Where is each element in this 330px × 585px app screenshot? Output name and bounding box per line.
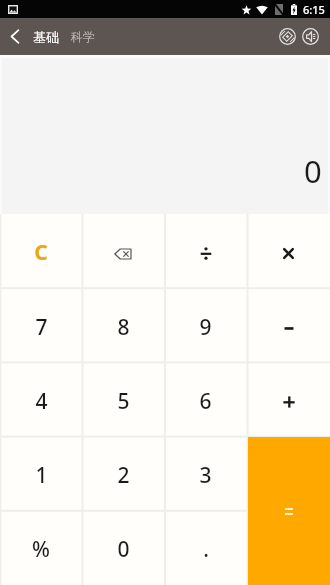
button[interactable]: % bbox=[0, 511, 82, 585]
staticText: 9 bbox=[199, 313, 212, 342]
button[interactable]: Back bbox=[0, 18, 30, 55]
staticText: 0 bbox=[304, 150, 322, 192]
staticText: 1 bbox=[35, 461, 48, 490]
staticText: 基础 bbox=[33, 29, 59, 45]
button[interactable]: Equals bbox=[248, 437, 330, 585]
button[interactable]: Plus bbox=[247, 363, 330, 437]
button[interactable]: Multiply bbox=[247, 214, 330, 289]
button[interactable]: C bbox=[0, 214, 82, 289]
staticText: 0 bbox=[117, 535, 130, 564]
staticText: % bbox=[32, 535, 50, 564]
staticText: 科学 bbox=[71, 29, 95, 44]
button[interactable]: 基础 bbox=[31, 18, 61, 55]
button[interactable]: Theme bbox=[276, 18, 299, 55]
button[interactable]: 8 bbox=[82, 289, 164, 363]
staticText: 2 bbox=[117, 461, 130, 490]
staticText: . bbox=[203, 535, 209, 564]
button[interactable]: . bbox=[164, 511, 247, 585]
staticText: 6:15 bbox=[303, 2, 325, 17]
button[interactable]: Minus bbox=[247, 289, 330, 363]
button[interactable]: Backspace bbox=[82, 214, 164, 289]
staticText: 5 bbox=[117, 387, 130, 416]
staticText: 3 bbox=[199, 461, 212, 490]
staticText: 8 bbox=[117, 313, 130, 342]
button[interactable]: 9 bbox=[164, 289, 247, 363]
button[interactable]: 3 bbox=[164, 437, 247, 511]
staticText: C bbox=[34, 238, 48, 267]
button[interactable]: 0 bbox=[82, 511, 164, 585]
button[interactable]: 2 bbox=[82, 437, 164, 511]
button[interactable]: 5 bbox=[82, 363, 164, 437]
button[interactable]: Divide bbox=[164, 214, 247, 289]
button[interactable]: 7 bbox=[0, 289, 82, 363]
button[interactable]: 6 bbox=[164, 363, 247, 437]
staticText: 7 bbox=[35, 313, 48, 342]
button[interactable]: 1 bbox=[0, 437, 82, 511]
button[interactable]: 科学 bbox=[69, 18, 97, 55]
button[interactable]: 4 bbox=[0, 363, 82, 437]
button[interactable]: Sound bbox=[299, 18, 322, 55]
staticText: 6 bbox=[199, 387, 212, 416]
staticText: 4 bbox=[35, 387, 48, 416]
